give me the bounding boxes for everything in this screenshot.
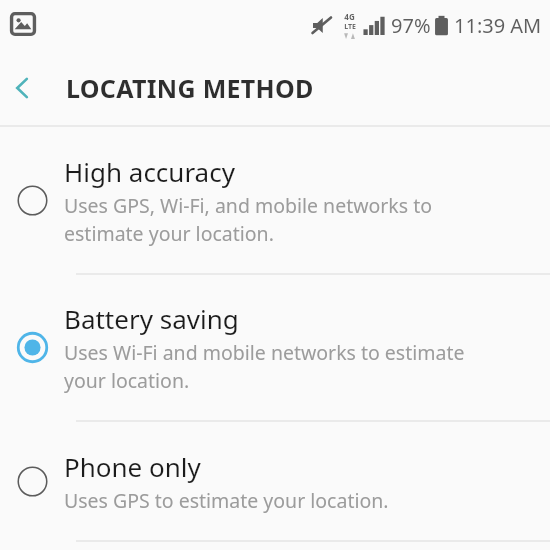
staticText: LTE xyxy=(344,22,356,32)
other: Signal strength xyxy=(363,16,386,35)
staticText: 4G xyxy=(344,11,355,22)
staticText: Phone only xyxy=(64,449,201,484)
other: Sound muted xyxy=(309,13,334,38)
staticText: Uses GPS, Wi-Fi, and mobile networks to … xyxy=(64,192,433,247)
other: Gallery xyxy=(10,11,36,37)
other: Battery xyxy=(434,14,449,37)
staticText: 97% xyxy=(391,12,431,39)
staticText: High accuracy xyxy=(64,154,235,189)
button[interactable]: Back xyxy=(0,65,46,111)
staticText: 11:39 AM xyxy=(454,12,542,39)
staticText: Battery saving xyxy=(64,301,239,336)
button[interactable]: Battery saving xyxy=(0,275,550,420)
staticText: LOCATING METHOD xyxy=(66,71,314,105)
staticText: Uses Wi-Fi and mobile networks to estima… xyxy=(64,339,465,394)
button[interactable]: High accuracy xyxy=(0,127,550,273)
button[interactable]: Phone only xyxy=(0,422,550,540)
staticText: Uses GPS to estimate your location. xyxy=(64,487,389,514)
